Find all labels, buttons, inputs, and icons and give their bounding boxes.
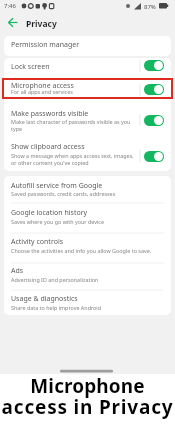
staticText: Lock screen — [11, 62, 141, 72]
button[interactable]: Autofill service from Google — [4, 176, 171, 203]
staticText: access in Privacy — [0, 394, 175, 420]
staticText: Advertising ID and personalization — [11, 276, 169, 283]
staticText: Usage & diagnostics — [11, 294, 169, 304]
staticText: Make last character of passwords visible… — [11, 118, 153, 133]
button[interactable]: Microphone access — [4, 78, 171, 99]
staticText: Autofill service from Google — [11, 181, 169, 191]
button[interactable]: Activity controls — [4, 233, 171, 263]
staticText: Saved passwords, credit cards, addresses — [11, 190, 169, 197]
staticText: Microphone — [0, 373, 175, 399]
staticText: Make passwords visible — [11, 109, 153, 119]
button[interactable]: Google location history — [4, 203, 171, 233]
staticText: Microphone access — [11, 81, 141, 91]
staticText: Share data to help improve Android — [11, 304, 169, 311]
button[interactable]: Show clipboard access — [4, 136, 171, 170]
staticText: Privacy — [26, 18, 57, 30]
staticText: 7:46 — [4, 2, 16, 10]
staticText: Google location history — [11, 208, 169, 218]
staticText: Ads — [11, 266, 169, 276]
staticText: 87% — [144, 3, 156, 11]
button[interactable]: Ads — [4, 263, 171, 290]
button[interactable]: Usage & diagnostics — [4, 290, 171, 314]
staticText: Show clipboard access — [11, 142, 141, 152]
staticText: Saves where you go with your device — [11, 218, 169, 225]
staticText: Permission manager — [11, 40, 80, 50]
staticText: Activity controls — [11, 237, 169, 247]
button[interactable] — [0, 13, 36, 33]
staticText: Show a message when apps access text, im… — [11, 152, 141, 167]
button[interactable]: Lock screen — [4, 58, 171, 78]
staticText: For all apps and services — [11, 88, 141, 95]
button[interactable]: Make passwords visible — [4, 100, 171, 136]
staticText: Choose the activities and info you allow… — [11, 247, 169, 254]
button[interactable]: Permission manager — [4, 36, 171, 56]
